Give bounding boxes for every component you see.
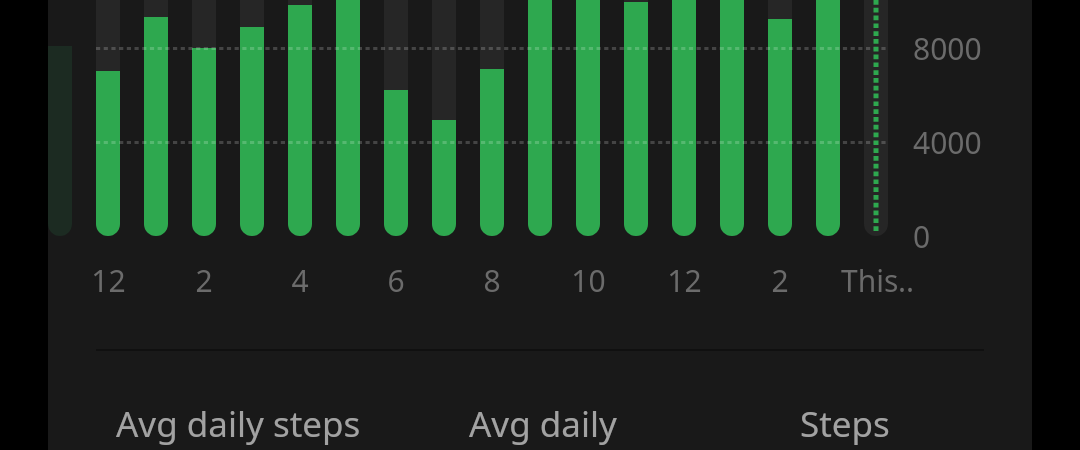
staticText: 10 (571, 260, 606, 301)
staticText: Avg daily steps (116, 400, 361, 448)
staticText: Avg daily (469, 400, 617, 448)
staticText: 12 (91, 260, 126, 301)
staticText: Steps (800, 400, 890, 448)
staticText: 4 (291, 260, 309, 301)
button[interactable]: Steps (800, 400, 890, 448)
staticText: .. (898, 260, 915, 301)
staticText: 0 (913, 216, 931, 257)
staticText: 2 (771, 260, 789, 301)
staticText: 6 (387, 260, 405, 301)
staticText: This (841, 260, 899, 301)
button[interactable]: Avg daily steps (116, 400, 361, 448)
staticText: 2 (195, 260, 213, 301)
staticText: 4000 (913, 122, 982, 163)
staticText: 8000 (913, 28, 982, 69)
staticText: 8 (483, 260, 501, 301)
button[interactable]: Daily steps bar chart (48, 0, 936, 240)
button[interactable]: Avg daily (469, 400, 617, 448)
staticText: 12 (667, 260, 702, 301)
